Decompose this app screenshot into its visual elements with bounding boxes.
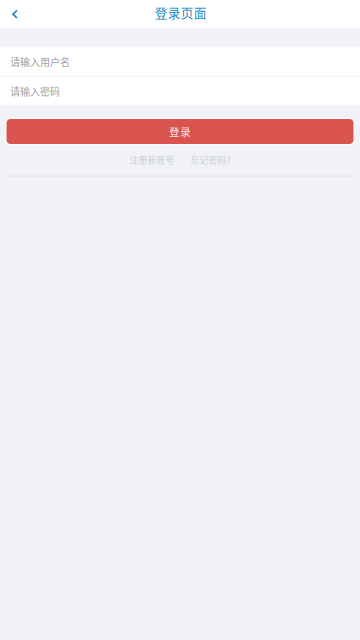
staticText: 注册新账号 bbox=[129, 153, 174, 166]
staticText: 请输入用户名 bbox=[10, 54, 70, 69]
button[interactable]: 返回 bbox=[0, 0, 30, 28]
button[interactable]: 请输入用户名 bbox=[0, 47, 360, 76]
staticText: 请输入密码 bbox=[10, 84, 60, 98]
staticText: 登录页面 bbox=[155, 3, 207, 21]
staticText: 忘记密码? bbox=[190, 153, 230, 166]
button[interactable]: 注册新账号 bbox=[129, 153, 174, 166]
button[interactable]: 登录 bbox=[5, 118, 355, 145]
staticText: 登录 bbox=[169, 124, 191, 139]
button[interactable]: 忘记密码? bbox=[190, 153, 230, 166]
button[interactable]: 请输入密码 bbox=[0, 77, 360, 105]
